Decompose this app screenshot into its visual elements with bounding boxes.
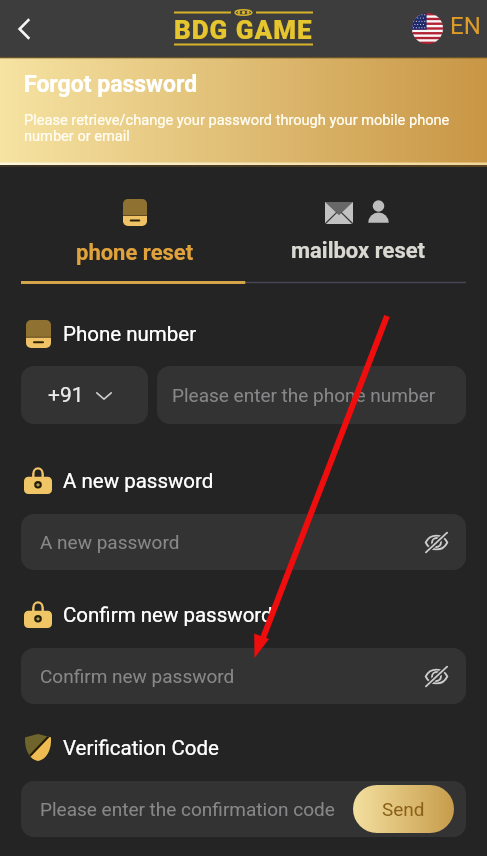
staticText: Confirm new password	[63, 603, 273, 627]
button[interactable]: Please enter the phone number	[157, 366, 466, 424]
button[interactable]: A new password	[21, 514, 466, 570]
staticText: Confirm new password	[40, 665, 235, 687]
button[interactable]: Back	[2, 7, 46, 51]
button[interactable]: mailbox reset	[247, 167, 470, 285]
staticText: Please enter the confirmation code	[40, 798, 335, 820]
button[interactable]: Language EN	[412, 13, 481, 44]
staticText: +91	[48, 383, 84, 408]
staticText: Please retrieve/change your password thr…	[24, 111, 462, 145]
staticText: A new password	[40, 531, 180, 553]
button[interactable]: Confirm new password	[21, 648, 466, 704]
staticText: Phone number	[63, 322, 197, 346]
staticText: Verification Code	[63, 736, 219, 760]
staticText: BDG GAME	[174, 15, 313, 45]
staticText: mailbox reset	[291, 238, 426, 264]
staticText: phone reset	[76, 240, 194, 266]
staticText: EN	[450, 12, 481, 40]
button[interactable]: Send	[353, 785, 454, 833]
staticText: Send	[382, 798, 425, 820]
staticText: Forgot password	[24, 71, 198, 98]
button[interactable]: Show password	[414, 654, 458, 698]
staticText: Please enter the phone number	[172, 384, 436, 406]
button[interactable]: phone reset	[23, 167, 246, 285]
staticText: A new password	[63, 469, 214, 493]
button[interactable]: +91	[21, 366, 148, 424]
button[interactable]: Show password	[414, 520, 458, 564]
